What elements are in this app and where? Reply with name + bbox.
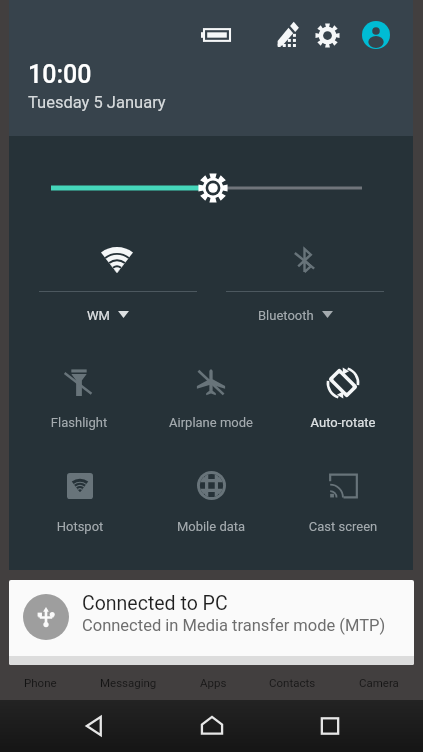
button[interactable]: Connected to PC bbox=[9, 580, 414, 665]
button[interactable]: Contacts bbox=[269, 676, 316, 689]
staticText: Auto-rotate bbox=[281, 415, 405, 430]
button[interactable]: Back bbox=[71, 702, 119, 750]
staticText: Airplane mode bbox=[149, 415, 273, 430]
button[interactable]: Brightness bbox=[9, 168, 413, 208]
button[interactable] bbox=[149, 453, 273, 535]
button[interactable]: Phone bbox=[24, 676, 57, 689]
button[interactable] bbox=[18, 455, 142, 537]
button[interactable] bbox=[281, 455, 405, 537]
staticText: Messaging bbox=[100, 676, 157, 689]
staticText: Cast screen bbox=[281, 519, 405, 534]
staticText: Phone bbox=[24, 676, 57, 689]
staticText: Flashlight bbox=[17, 415, 141, 430]
staticText: Tuesday 5 January bbox=[28, 93, 166, 112]
button[interactable] bbox=[281, 348, 405, 430]
button[interactable] bbox=[33, 229, 203, 325]
button[interactable]: Messaging bbox=[100, 676, 157, 689]
staticText: Connected to PC bbox=[82, 592, 228, 615]
button[interactable]: Edit tiles bbox=[275, 20, 301, 50]
button[interactable] bbox=[17, 350, 141, 432]
button[interactable]: Battery bbox=[193, 19, 237, 51]
button[interactable]: Camera bbox=[359, 676, 399, 689]
button[interactable]: Recent apps bbox=[306, 702, 354, 750]
staticText: Apps bbox=[200, 676, 227, 689]
staticText: 10:00 bbox=[28, 60, 92, 89]
staticText: Hotspot bbox=[18, 519, 142, 534]
button[interactable]: Apps bbox=[200, 676, 227, 689]
staticText: Bluetooth bbox=[258, 308, 314, 323]
button[interactable]: Settings bbox=[315, 23, 340, 48]
staticText: Contacts bbox=[269, 676, 316, 689]
staticText: WM bbox=[87, 308, 110, 323]
button[interactable]: User bbox=[362, 21, 390, 49]
staticText: Mobile data bbox=[149, 519, 273, 534]
staticText: Camera bbox=[359, 676, 399, 689]
button[interactable]: Home bbox=[188, 702, 236, 750]
button[interactable] bbox=[220, 229, 390, 325]
button[interactable] bbox=[149, 350, 273, 432]
staticText: Connected in Media transfer mode (MTP) bbox=[82, 616, 386, 635]
